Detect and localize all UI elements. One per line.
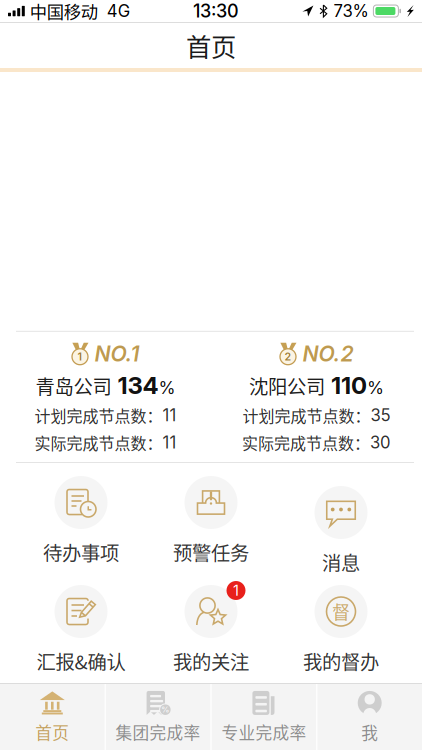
staticText: 汇报&确认 — [36, 647, 125, 675]
staticText: 11 — [162, 432, 176, 452]
staticText: NO.1 — [94, 341, 139, 367]
button[interactable]: 消息 — [276, 474, 406, 576]
button[interactable]: 1 — [146, 583, 276, 675]
staticText: 35 — [370, 405, 390, 425]
staticText: 专业完成率 — [221, 720, 306, 744]
button[interactable]: 督 — [276, 583, 406, 675]
staticText: 11 — [162, 405, 176, 425]
staticText: NO.2 — [302, 341, 353, 367]
staticText: 首页 — [186, 27, 236, 64]
staticText: 中国移动 — [30, 0, 98, 24]
button[interactable]: 我 — [317, 684, 422, 750]
staticText: 待办事项 — [43, 538, 119, 566]
button[interactable]: 汇报&确认 — [16, 583, 146, 675]
button[interactable]: 首页 — [0, 684, 105, 750]
button[interactable]: 预警任务 — [146, 474, 276, 566]
staticText: 计划完成节点数： — [242, 404, 370, 427]
staticText: 我的督办 — [303, 647, 379, 675]
staticText: 实际完成节点数： — [242, 431, 370, 454]
staticText: 2 — [284, 350, 291, 363]
staticText: 1 — [233, 582, 239, 599]
staticText: 首页 — [35, 720, 69, 744]
button[interactable]: 待办事项 — [16, 474, 146, 566]
staticText: 110 — [331, 371, 367, 400]
staticText: 督 — [332, 598, 350, 625]
staticText: 集团完成率 — [116, 720, 201, 744]
staticText: 1 — [77, 350, 82, 363]
staticText: 计划完成节点数： — [34, 404, 162, 427]
staticText: 沈阳公司 — [249, 371, 325, 399]
staticText: 134 — [117, 371, 158, 400]
staticText: 我 — [361, 720, 378, 744]
staticText: 73% — [333, 1, 368, 21]
staticText: % — [158, 377, 175, 398]
staticText: 30 — [370, 432, 391, 452]
staticText: % — [367, 377, 384, 398]
staticText: 我的关注 — [173, 647, 249, 675]
staticText: % — [161, 705, 169, 714]
staticText: 青岛公司 — [35, 371, 111, 399]
button[interactable]: % — [106, 684, 210, 750]
staticText: 预警任务 — [173, 538, 249, 566]
staticText: 13:30 — [193, 0, 239, 22]
button[interactable]: 专业完成率 — [212, 684, 316, 750]
staticText: 实际完成节点数： — [34, 431, 162, 454]
staticText: 4G — [107, 1, 130, 21]
staticText: 消息 — [322, 548, 360, 576]
